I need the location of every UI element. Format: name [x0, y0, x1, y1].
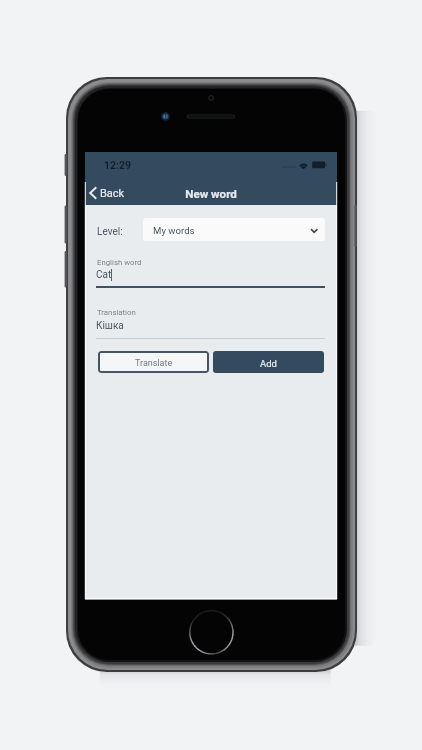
- staticText: New word: [85, 187, 337, 201]
- staticText: My words: [153, 225, 195, 236]
- other: Open level list: [310, 228, 318, 236]
- button[interactable]: My words: [143, 218, 325, 241]
- staticText: Translate: [135, 358, 173, 369]
- staticText: 12:29: [104, 159, 132, 171]
- staticText: Кішка: [96, 320, 124, 332]
- staticText: Cat: [96, 269, 112, 281]
- button[interactable]: Back: [86, 184, 131, 202]
- staticText: Add: [260, 358, 277, 369]
- button[interactable]: Add: [213, 351, 324, 373]
- staticText: Level:: [97, 226, 123, 238]
- staticText: Back: [100, 187, 125, 200]
- button[interactable]: Translate: [98, 351, 209, 373]
- staticText: English word: [97, 258, 142, 267]
- staticText: Translation: [97, 308, 136, 317]
